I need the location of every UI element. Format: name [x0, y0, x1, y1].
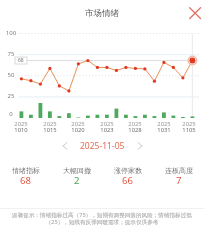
- staticText: 2025-11-05: [80, 140, 125, 152]
- staticText: 2025: [123, 120, 147, 128]
- staticText: 情绪指标: [12, 166, 40, 175]
- staticText: 0: [1, 110, 21, 118]
- staticText: 2025: [66, 120, 90, 128]
- staticText: 温馨提示：情绪指标过高（75），短期有调整回落的风险；情绪指标过低（25），短线…: [7, 211, 197, 226]
- staticText: 66: [122, 174, 133, 187]
- staticText: 涨停家数: [114, 166, 142, 175]
- button[interactable]: Next day: [132, 138, 148, 154]
- staticText: 1010: [9, 126, 33, 134]
- button[interactable]: Close: [186, 4, 204, 22]
- staticText: 1028: [123, 126, 147, 134]
- staticText: 1023: [95, 126, 119, 134]
- staticText: 2025: [177, 120, 201, 128]
- staticText: 2025: [9, 120, 33, 128]
- staticText: 1031: [152, 126, 176, 134]
- button[interactable]: 情绪指标: [0, 166, 51, 188]
- staticText: 连板高度: [165, 166, 193, 175]
- staticText: 75: [1, 50, 21, 58]
- staticText: 市场情绪: [85, 8, 119, 19]
- staticText: 50: [1, 71, 21, 79]
- staticText: 1105: [177, 126, 201, 134]
- staticText: 100: [1, 29, 21, 37]
- button[interactable]: 连板高度: [153, 166, 204, 188]
- staticText: 1015: [38, 126, 62, 134]
- button[interactable]: 大幅回撤: [51, 166, 102, 188]
- staticText: 68: [20, 174, 31, 187]
- button[interactable]: 涨停家数: [102, 166, 153, 188]
- staticText: 1020: [66, 126, 90, 134]
- staticText: 2025: [95, 120, 119, 128]
- staticText: 2: [74, 174, 80, 187]
- staticText: 大幅回撤: [63, 166, 91, 175]
- staticText: 2025: [38, 120, 62, 128]
- staticText: 7: [176, 174, 182, 187]
- staticText: 68: [18, 57, 24, 64]
- staticText: 2025: [152, 120, 176, 128]
- staticText: 25: [1, 92, 21, 100]
- button[interactable]: Previous day: [57, 138, 73, 154]
